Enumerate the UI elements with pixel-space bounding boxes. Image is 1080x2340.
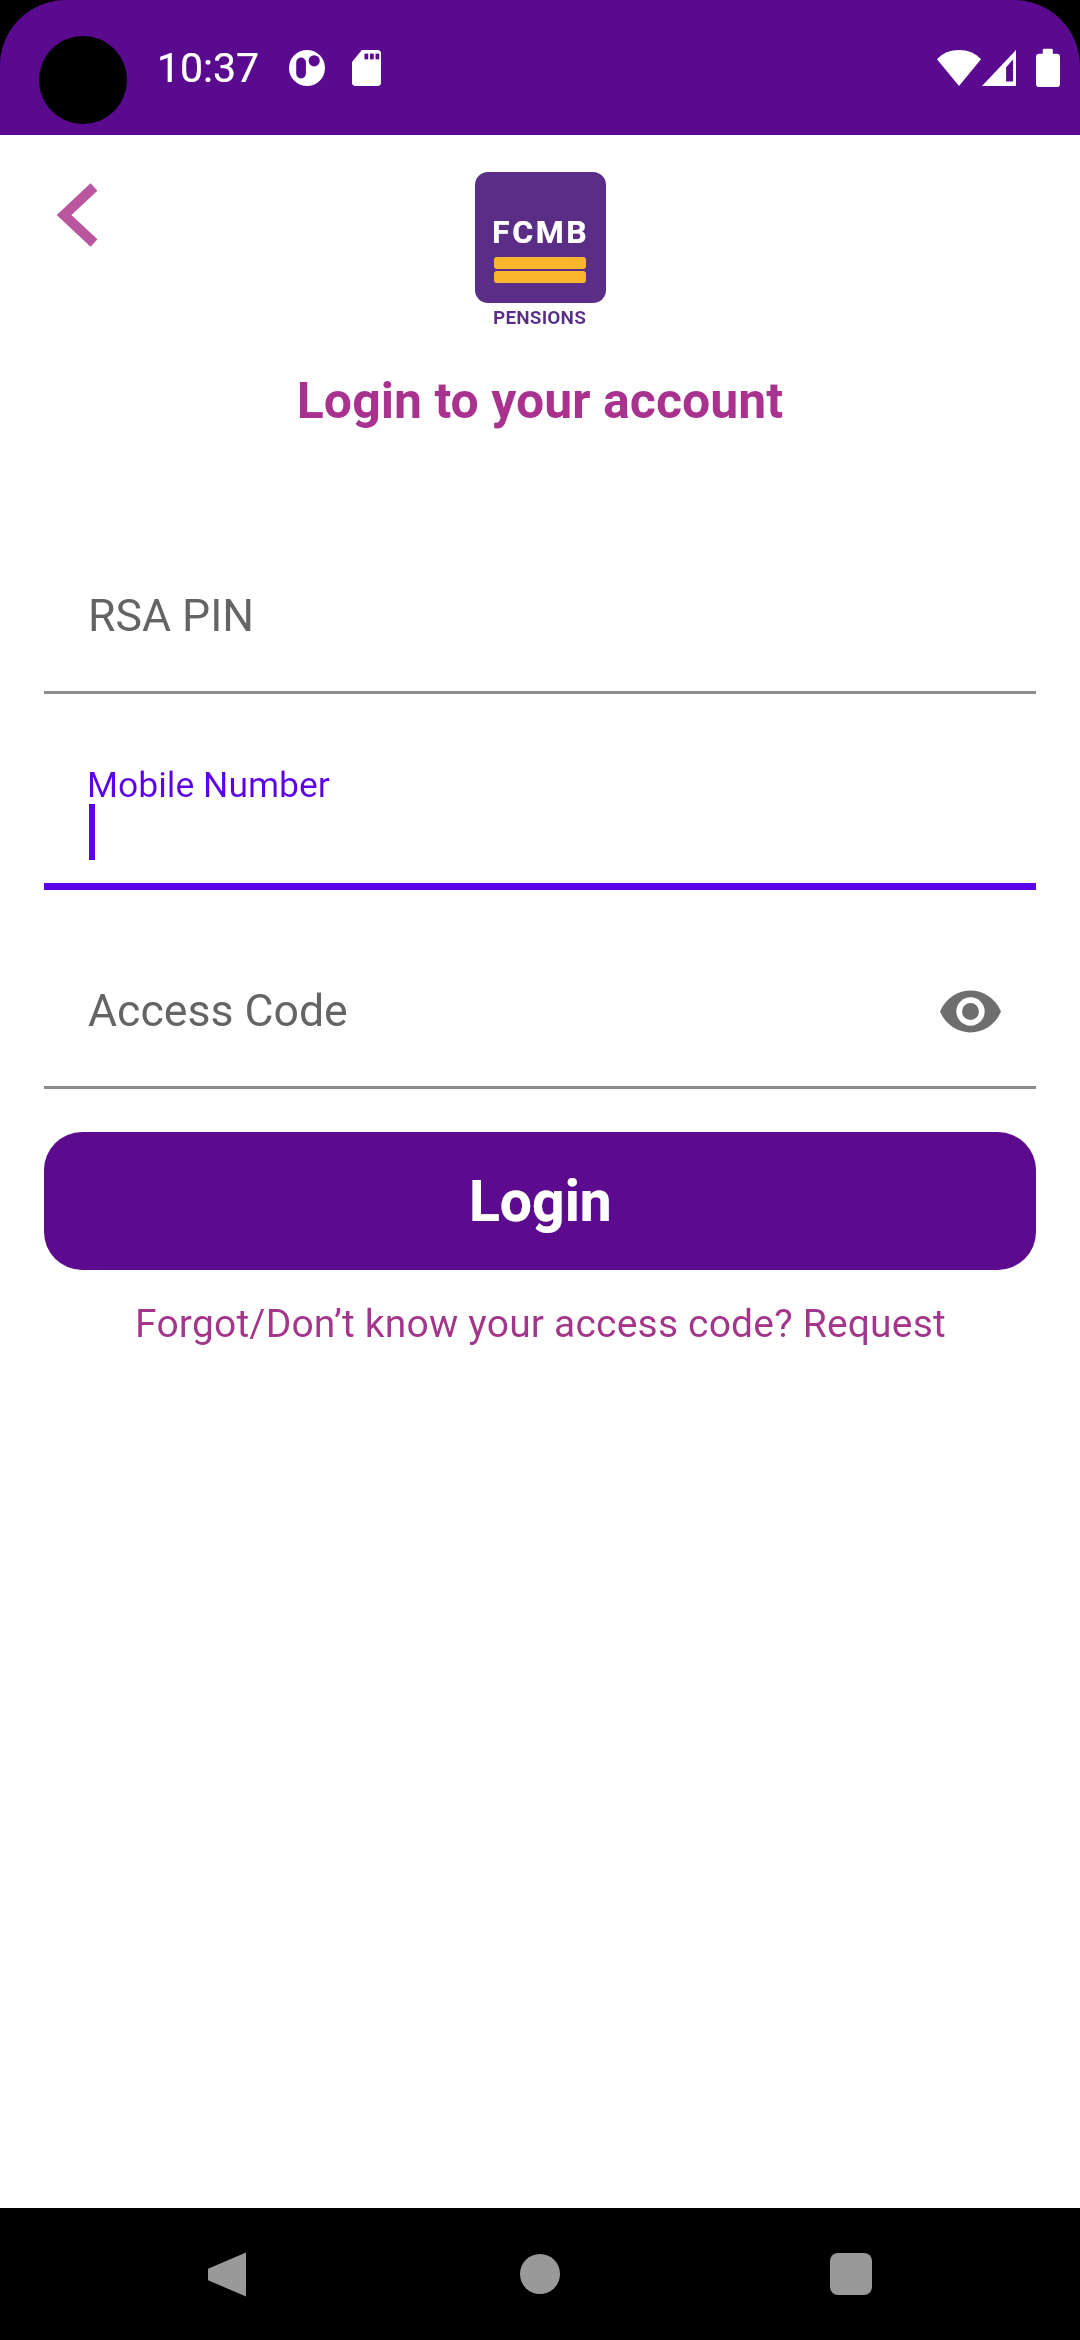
- staticText: Forgot/Don’t know your access code? Requ…: [135, 1301, 946, 1347]
- button[interactable]: Back: [28, 160, 128, 260]
- button[interactable]: Login: [44, 1132, 1036, 1270]
- staticText: FCMB: [492, 213, 590, 251]
- staticText: RSA PIN: [88, 590, 255, 642]
- staticText: Login: [469, 1168, 612, 1235]
- button[interactable]: Home: [480, 2214, 600, 2334]
- staticText: Access Code: [88, 985, 348, 1037]
- button[interactable]: Show access code: [932, 973, 1008, 1049]
- staticText: 10:37: [157, 44, 260, 92]
- staticText: Mobile Number: [87, 764, 330, 806]
- button[interactable]: Access Code: [44, 965, 1036, 1089]
- button[interactable]: Recent apps: [791, 2214, 911, 2334]
- button[interactable]: Mobile Number: [44, 760, 1036, 890]
- button[interactable]: RSA PIN: [44, 570, 1036, 694]
- staticText: PENSIONS: [493, 306, 587, 328]
- button[interactable]: Forgot/Don’t know your access code? Requ…: [0, 1301, 1080, 1347]
- staticText: Login to your account: [0, 372, 1080, 431]
- button[interactable]: Back: [166, 2214, 286, 2334]
